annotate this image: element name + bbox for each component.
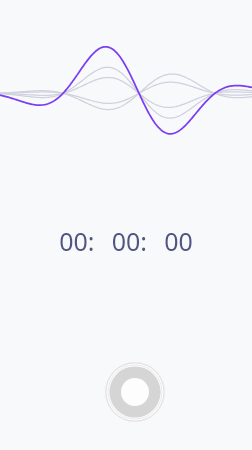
button[interactable]: Record [105,362,165,422]
staticText: 00: 00: 00 [59,224,193,254]
